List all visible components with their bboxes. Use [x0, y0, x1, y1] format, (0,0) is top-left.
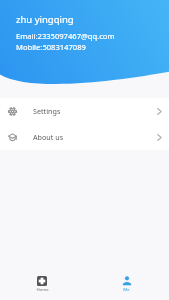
button[interactable]: Me — [84, 260, 169, 300]
staticText: About us — [33, 132, 64, 142]
staticText: Home — [36, 286, 49, 292]
staticText: Me — [123, 286, 130, 292]
button[interactable]: Settings — [0, 98, 169, 124]
other: Open Settings — [154, 108, 161, 115]
staticText: Email:2335097467@qq.com — [16, 31, 115, 41]
staticText: Settings — [33, 106, 61, 116]
other: Open About us — [154, 134, 161, 141]
staticText: Mobile:5083147089 — [16, 42, 86, 52]
button[interactable]: About us — [0, 124, 169, 150]
staticText: zhu yingqing — [16, 13, 74, 26]
button[interactable]: Home — [0, 260, 84, 300]
